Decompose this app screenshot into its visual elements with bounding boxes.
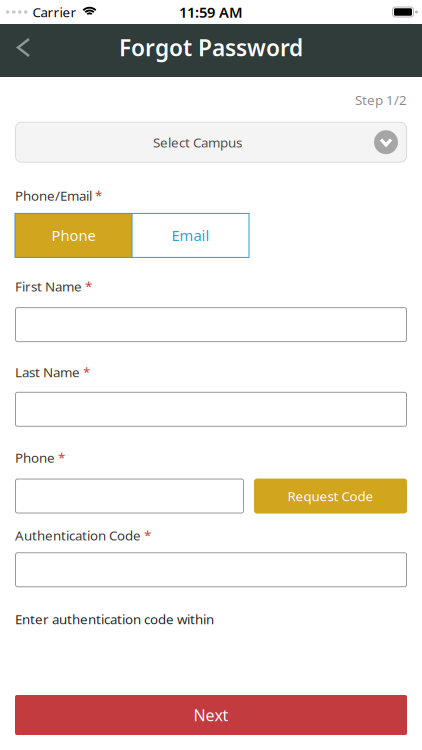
- staticText: Next: [193, 704, 228, 726]
- staticText: Phone: [51, 226, 95, 245]
- staticText: Carrier: [32, 3, 76, 21]
- staticText: Last Name: [15, 363, 80, 381]
- staticText: First Name: [15, 277, 82, 295]
- staticText: Request Code: [287, 487, 373, 505]
- staticText: Phone/Email: [15, 187, 92, 204]
- staticText: *: [80, 363, 90, 381]
- button[interactable]: Phone: [15, 213, 132, 257]
- staticText: *: [55, 449, 65, 466]
- staticText: Phone: [15, 449, 55, 466]
- button[interactable]: Next: [15, 695, 407, 735]
- staticText: *: [92, 187, 102, 204]
- staticText: *: [141, 526, 151, 544]
- button[interactable]: Back: [0, 24, 29, 77]
- staticText: *: [82, 277, 92, 295]
- button[interactable]: Email: [132, 213, 249, 257]
- staticText: Email: [171, 226, 209, 245]
- button[interactable]: Select Campus: [15, 122, 407, 163]
- staticText: Enter authentication code within: [15, 610, 214, 628]
- staticText: Select Campus: [153, 133, 242, 151]
- staticText: 11:59 AM: [179, 2, 243, 22]
- staticText: Step 1/2: [355, 91, 407, 109]
- staticText: Authentication Code: [15, 526, 141, 544]
- button[interactable]: Request Code: [254, 478, 407, 513]
- staticText: Forgot Password: [119, 32, 303, 62]
